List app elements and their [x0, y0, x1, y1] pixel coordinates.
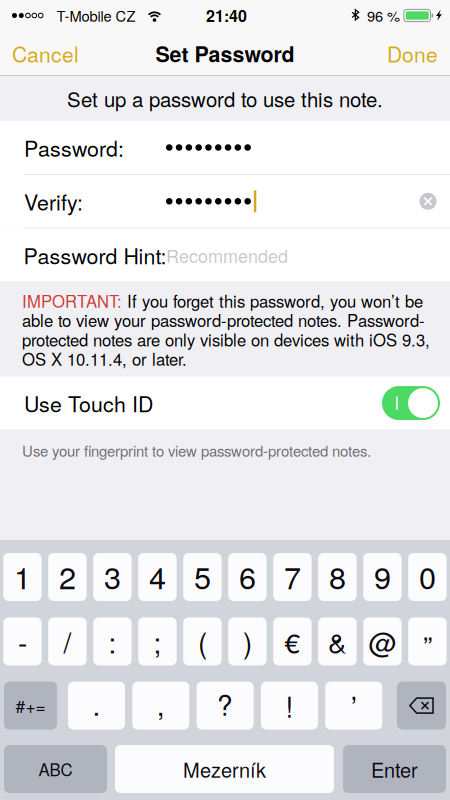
staticText: ABC — [38, 757, 72, 781]
button[interactable]: ( — [183, 617, 222, 665]
staticText: ” — [423, 624, 432, 664]
staticText: Verify: — [24, 186, 83, 216]
button[interactable]: @ — [363, 617, 402, 665]
staticText: 7 — [284, 554, 301, 598]
staticText: 5 — [194, 554, 211, 598]
button[interactable]: Password: — [0, 121, 450, 174]
staticText: € — [284, 621, 300, 661]
staticText: Done — [387, 38, 438, 69]
staticText: 6 — [239, 554, 256, 598]
button[interactable]: & — [318, 617, 357, 665]
button[interactable]: / — [48, 617, 87, 665]
button[interactable]: 4 — [138, 553, 177, 601]
button[interactable]: Cancel — [0, 31, 102, 75]
staticText: Set up a password to use this note. — [67, 84, 383, 113]
button[interactable]: Enter — [343, 745, 446, 793]
button[interactable]: ABC — [4, 745, 107, 793]
staticText: IMPORTANT: — [22, 289, 122, 312]
staticText: Recommended — [166, 242, 288, 268]
button[interactable]: , — [132, 682, 189, 730]
staticText: OS X 10.11.4, or later. — [22, 347, 187, 371]
staticText: 96 % — [367, 5, 400, 26]
staticText: Password Hint: — [23, 240, 166, 270]
button[interactable]: Delete — [397, 682, 446, 730]
staticText: 1 — [14, 554, 31, 598]
button[interactable]: ” — [408, 617, 447, 665]
button[interactable]: 6 — [228, 553, 267, 601]
staticText: Use your fingerprint to view password-pr… — [22, 440, 371, 461]
button[interactable]: 8 — [318, 553, 357, 601]
staticText: / — [63, 621, 71, 661]
staticText: - — [18, 621, 27, 661]
staticText: 9 — [374, 554, 391, 598]
staticText: 0 — [419, 554, 436, 598]
button[interactable]: 0 — [408, 553, 447, 601]
button[interactable]: Use Touch ID — [0, 377, 450, 430]
staticText: 21:40 — [206, 4, 247, 27]
staticText: 8 — [329, 554, 346, 598]
button[interactable]: : — [93, 617, 132, 665]
button[interactable]: € — [273, 617, 312, 665]
button[interactable]: ? — [197, 682, 254, 730]
staticText: ) — [243, 621, 252, 661]
button[interactable]: . — [68, 682, 125, 730]
staticText: 3 — [104, 554, 121, 598]
staticText: ( — [198, 621, 207, 661]
button[interactable]: ’ — [325, 682, 382, 730]
button[interactable]: Password Hint: — [0, 229, 450, 282]
button[interactable]: 7 — [273, 553, 312, 601]
staticText: ’ — [351, 686, 357, 726]
button[interactable]: ! — [261, 682, 318, 730]
staticText: Cancel — [12, 38, 79, 69]
staticText: Mezerník — [183, 755, 266, 783]
staticText: protected notes are only visible on devi… — [22, 327, 430, 351]
staticText: Enter — [371, 755, 418, 783]
staticText: & — [328, 621, 347, 661]
button[interactable]: Mezerník — [115, 745, 334, 793]
staticText: 4 — [149, 554, 166, 598]
staticText: ? — [217, 684, 233, 724]
staticText: If you forget this password, you won’t b… — [122, 289, 423, 312]
staticText: T-Mobile CZ — [56, 5, 135, 26]
button[interactable]: - — [3, 617, 42, 665]
staticText: Set Password — [155, 38, 294, 69]
staticText: @ — [368, 621, 396, 661]
staticText: ! — [285, 686, 293, 726]
button[interactable]: Clear text — [410, 179, 446, 223]
staticText: able to view your password-protected not… — [22, 308, 425, 332]
staticText: Use Touch ID — [24, 388, 153, 418]
button[interactable]: Done — [358, 31, 450, 75]
staticText: : — [108, 621, 116, 661]
button[interactable]: ; — [138, 617, 177, 665]
staticText: #+= — [15, 693, 45, 718]
button[interactable]: 5 — [183, 553, 222, 601]
staticText: . — [92, 684, 100, 724]
button[interactable]: ) — [228, 617, 267, 665]
staticText: Password: — [24, 132, 124, 163]
staticText: 2 — [59, 554, 76, 598]
button[interactable]: 2 — [48, 553, 87, 601]
staticText: , — [157, 684, 165, 724]
staticText: ; — [153, 621, 161, 661]
button[interactable]: 3 — [93, 553, 132, 601]
button[interactable]: 9 — [363, 553, 402, 601]
button[interactable]: #+= — [4, 682, 57, 730]
button[interactable]: Verify: — [0, 175, 450, 228]
button[interactable]: 1 — [3, 553, 42, 601]
